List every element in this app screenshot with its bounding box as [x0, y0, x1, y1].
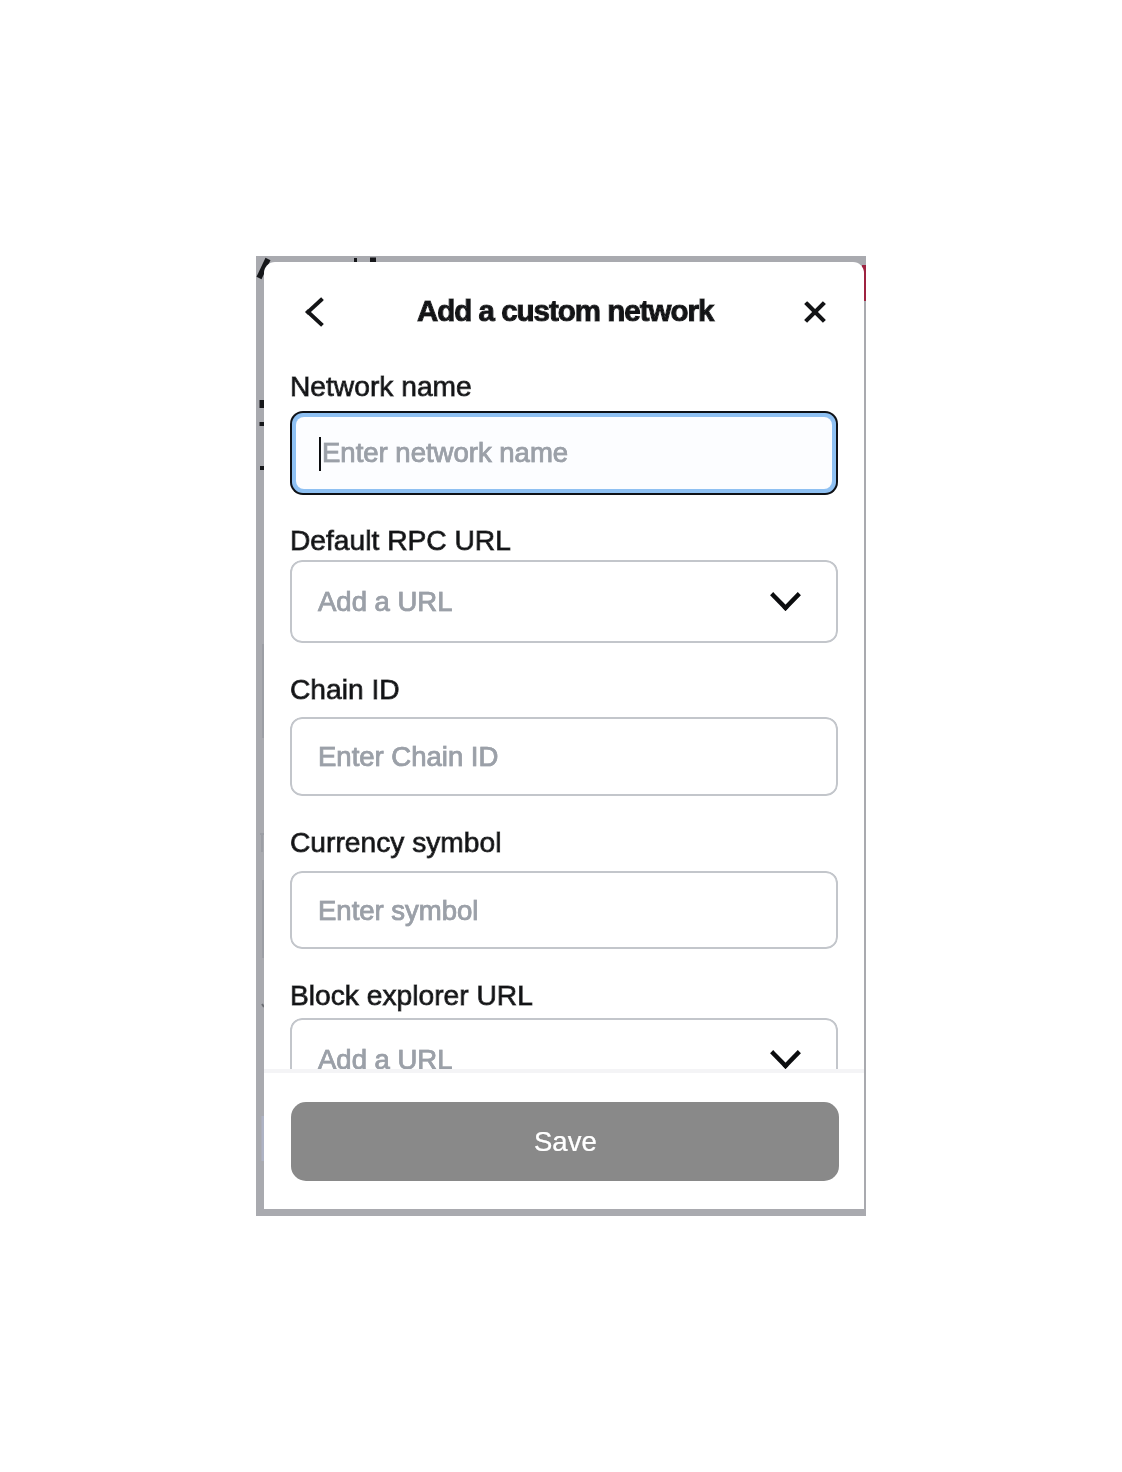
staticText: Network name — [290, 370, 472, 402]
staticText: Chain ID — [290, 673, 400, 705]
button[interactable]: Close — [791, 288, 839, 336]
staticText: Default RPC URL — [290, 524, 511, 556]
button[interactable]: Back — [290, 288, 338, 336]
button[interactable]: Add a URL — [290, 560, 838, 643]
button[interactable]: Save — [291, 1102, 839, 1181]
staticText: Chain ID — [290, 673, 400, 705]
staticText: Add a URL — [318, 586, 453, 617]
staticText: Add a URL — [318, 1044, 453, 1075]
staticText: Enter network name — [322, 437, 569, 468]
staticText: Save — [534, 1126, 597, 1157]
staticText: Add a custom network — [417, 294, 714, 327]
staticText: Add a URL — [318, 586, 453, 617]
staticText: Add a URL — [318, 1044, 453, 1075]
staticText: Default RPC URL — [290, 524, 511, 556]
staticText: Block explorer URL — [290, 979, 533, 1011]
staticText: Enter symbol — [318, 895, 479, 926]
staticText: Block explorer URL — [290, 979, 533, 1011]
button[interactable]: Enter network name — [290, 411, 838, 495]
staticText: Enter network name — [322, 437, 569, 468]
staticText: Currency symbol — [290, 826, 502, 858]
staticText: Enter Chain ID — [318, 741, 499, 772]
staticText: Enter symbol — [318, 895, 479, 926]
button[interactable]: Add a URL — [290, 1018, 838, 1101]
staticText: Add a custom network — [417, 294, 714, 327]
button[interactable]: Enter symbol — [290, 871, 838, 949]
staticText: Network name — [290, 370, 472, 402]
button[interactable]: Enter Chain ID — [290, 717, 838, 796]
staticText: Currency symbol — [290, 826, 502, 858]
staticText: Enter Chain ID — [318, 741, 499, 772]
